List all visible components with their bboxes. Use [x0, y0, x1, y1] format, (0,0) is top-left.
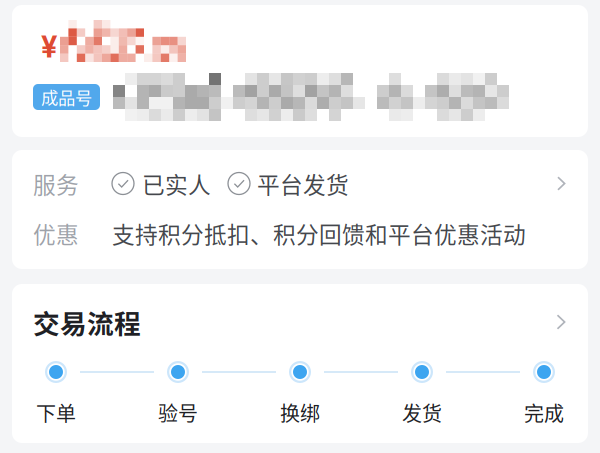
staticText: 交易流程 [33, 303, 141, 341]
staticText: ¥ [41, 29, 57, 64]
staticText: 验号 [158, 398, 198, 427]
staticText: 优惠 [33, 217, 79, 250]
staticText: 平台发货 [257, 167, 349, 200]
staticText: 换绑 [280, 398, 320, 427]
staticText: 成品号 [41, 84, 92, 110]
button[interactable]: 优惠 [12, 217, 588, 251]
staticText: 完成 [524, 398, 564, 427]
staticText: 支持积分抵扣、积分回馈和平台优惠活动 [112, 217, 526, 250]
button[interactable]: ¥ [12, 5, 588, 137]
staticText: 已实人 [142, 167, 211, 200]
staticText: 发货 [402, 398, 442, 427]
staticText: 服务 [33, 167, 79, 200]
button[interactable]: 交易流程 [12, 284, 588, 360]
staticText: 下单 [36, 398, 76, 427]
button[interactable]: 服务 [12, 150, 588, 217]
